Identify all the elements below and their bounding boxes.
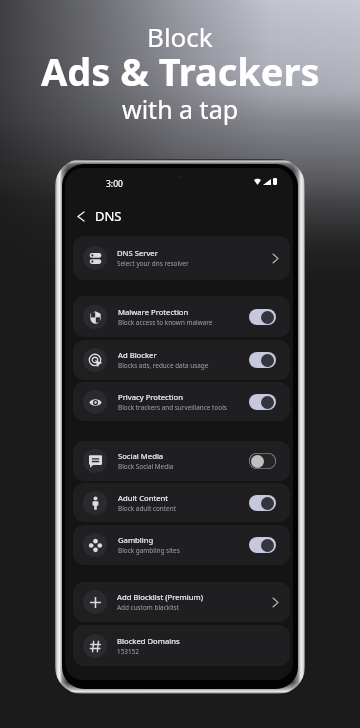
staticText: Ad Blocker: [118, 350, 157, 360]
button[interactable]: Gambling: [73, 525, 290, 565]
staticText: 153152: [117, 647, 139, 656]
staticText: DNS Server: [117, 248, 158, 258]
staticText: Block gambling sites: [118, 546, 180, 555]
staticText: Add Blocklist (Premium): [117, 592, 203, 602]
button[interactable]: Enabled toggle: [249, 309, 276, 325]
staticText: Ads & Trackers: [41, 45, 320, 97]
staticText: 3:00: [106, 178, 123, 190]
button[interactable]: Privacy Protection: [73, 382, 290, 421]
staticText: Block Social Media: [118, 462, 174, 471]
button[interactable]: Disabled toggle: [249, 453, 276, 469]
button[interactable]: Back: [73, 208, 89, 224]
staticText: Gambling: [118, 535, 154, 545]
staticText: Privacy Protection: [118, 392, 183, 402]
button[interactable]: Malware Protection: [73, 296, 290, 337]
button[interactable]: Enabled toggle: [249, 352, 276, 368]
staticText: Block access to known malware: [118, 318, 213, 327]
button[interactable]: Add Blocklist (Premium): [73, 582, 290, 622]
staticText: Blocks ads, reduce data usage: [118, 361, 209, 370]
staticText: Adult Content: [118, 493, 169, 503]
button[interactable]: Enabled toggle: [249, 537, 276, 553]
staticText: Block: [147, 19, 213, 54]
button[interactable]: Ad Blocker: [73, 340, 290, 380]
button[interactable]: Adult Content: [73, 483, 290, 522]
staticText: Blocked Domains: [117, 636, 180, 646]
staticText: Block adult content: [118, 504, 176, 513]
staticText: Add custom blacklist: [117, 603, 179, 612]
staticText: Select your dns resolver: [117, 259, 189, 268]
staticText: Malware Protection: [118, 307, 189, 317]
staticText: Block trackers and surveillance tools: [118, 403, 227, 412]
staticText: with a tap: [122, 92, 239, 126]
button[interactable]: Enabled toggle: [249, 394, 276, 410]
button[interactable]: Social Media: [73, 441, 290, 481]
staticText: DNS: [95, 207, 122, 225]
staticText: Social Media: [118, 451, 164, 461]
button[interactable]: DNS Server: [73, 236, 290, 280]
button[interactable]: Blocked Domains: [73, 625, 290, 666]
button[interactable]: Enabled toggle: [249, 495, 276, 511]
